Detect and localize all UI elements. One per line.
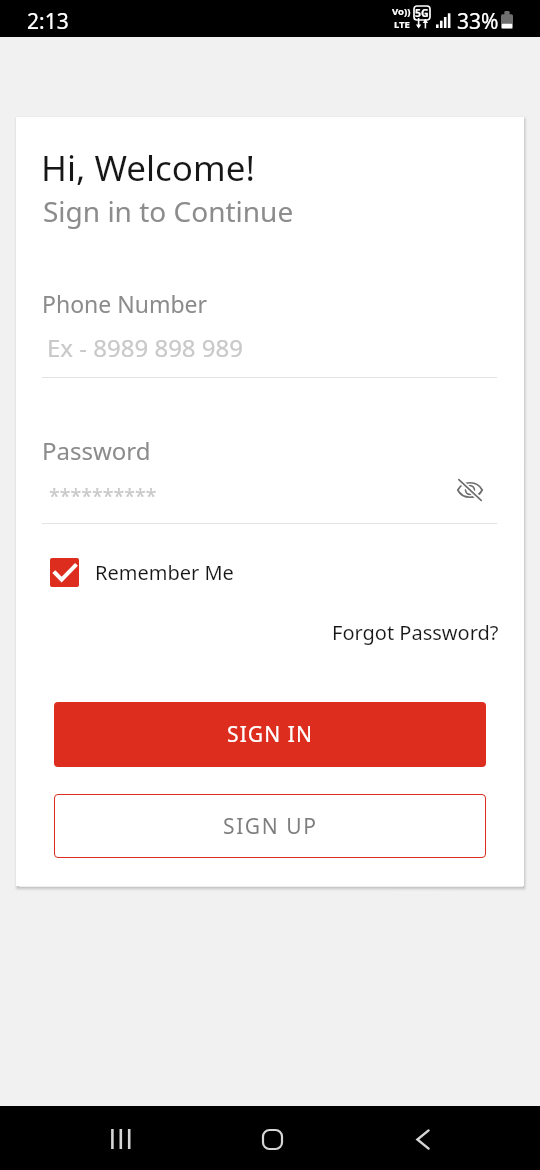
staticText: ********** bbox=[49, 482, 157, 509]
button[interactable]: SIGN IN bbox=[54, 702, 486, 767]
staticText: Sign in to Continue bbox=[43, 192, 294, 230]
staticText: Password bbox=[42, 434, 151, 467]
button[interactable]: Show password bbox=[452, 472, 488, 508]
button[interactable]: Recents bbox=[90, 1108, 152, 1170]
button[interactable]: Back bbox=[392, 1108, 454, 1170]
button[interactable]: Home bbox=[241, 1108, 303, 1170]
staticText: SIGN UP bbox=[223, 812, 318, 841]
button[interactable]: Forgot Password? bbox=[332, 619, 499, 646]
button[interactable]: SIGN UP bbox=[54, 794, 486, 858]
staticText: 2:13 bbox=[27, 7, 69, 36]
staticText: Phone Number bbox=[42, 288, 208, 319]
staticText: Vo)) bbox=[392, 5, 411, 18]
staticText: Forgot Password? bbox=[332, 619, 499, 646]
staticText: 5G bbox=[415, 6, 429, 20]
staticText: Hi, Welcome! bbox=[41, 144, 255, 192]
button[interactable]: Remember Me bbox=[50, 558, 234, 587]
staticText: SIGN IN bbox=[227, 720, 314, 749]
staticText: Remember Me bbox=[95, 559, 234, 586]
staticText: LTE bbox=[394, 18, 410, 31]
staticText: 33% bbox=[457, 7, 499, 36]
staticText: Ex - 8989 898 989 bbox=[47, 331, 244, 364]
